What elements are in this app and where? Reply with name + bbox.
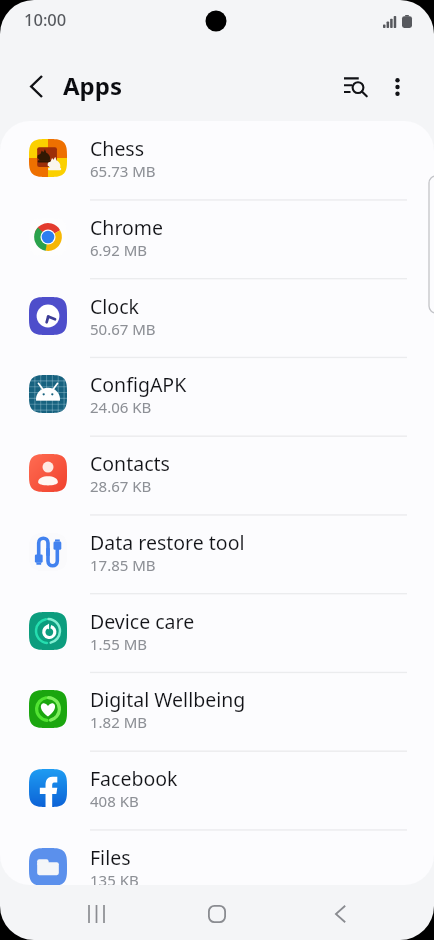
staticText: 1.82 MB: [90, 712, 148, 732]
staticText: ConfigAPK: [90, 371, 187, 398]
staticText: Clock: [90, 293, 139, 320]
staticText: Digital Wellbeing: [90, 686, 246, 713]
staticText: Contacts: [90, 450, 170, 477]
button[interactable]: Navigate up: [12, 62, 60, 110]
button[interactable]: More options: [375, 65, 419, 109]
button[interactable]: Back: [316, 890, 364, 938]
staticText: Device care: [90, 608, 195, 635]
staticText: 135 KB: [90, 870, 139, 885]
button[interactable]: Data restore tool: [0, 515, 434, 594]
staticText: Files: [90, 844, 131, 871]
button[interactable]: Clock: [0, 279, 434, 358]
button[interactable]: Files: [0, 830, 434, 885]
staticText: Chrome: [90, 214, 164, 241]
staticText: 1.55 MB: [90, 634, 148, 654]
button[interactable]: Recent apps: [72, 890, 120, 938]
button[interactable]: Digital Wellbeing: [0, 672, 434, 751]
button[interactable]: Chrome: [0, 200, 434, 279]
staticText: 65.73 MB: [90, 161, 156, 181]
staticText: 408 KB: [90, 791, 139, 811]
staticText: Chess: [90, 135, 145, 162]
staticText: 10:00: [24, 8, 67, 30]
staticText: 28.67 KB: [90, 476, 152, 496]
button[interactable]: Contacts: [0, 436, 434, 515]
staticText: 6.92 MB: [90, 240, 148, 260]
button[interactable]: Facebook: [0, 751, 434, 830]
staticText: Data restore tool: [90, 529, 245, 556]
button[interactable]: Chess: [0, 121, 434, 200]
staticText: 24.06 KB: [90, 397, 152, 417]
button[interactable]: Home: [193, 890, 241, 938]
button[interactable]: Device care: [0, 594, 434, 673]
button[interactable]: Search and sort: [333, 64, 377, 108]
staticText: 50.67 MB: [90, 319, 156, 339]
button[interactable]: ConfigAPK: [0, 357, 434, 436]
staticText: Facebook: [90, 765, 178, 792]
staticText: 17.85 MB: [90, 555, 156, 575]
staticText: Apps: [63, 69, 122, 102]
